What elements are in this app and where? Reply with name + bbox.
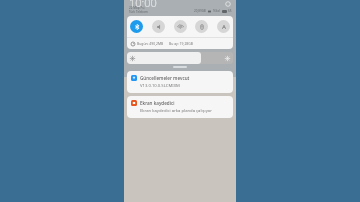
staticText: Güncellemeler mevcut	[140, 75, 190, 81]
button[interactable]: Settings	[225, 1, 231, 7]
button[interactable]: Quick setting	[217, 20, 230, 33]
button[interactable]: Bugün: 490,2MB	[127, 38, 233, 49]
staticText: Ekran kaydedici	[140, 100, 175, 106]
staticText: %Sal	[213, 9, 220, 13]
button[interactable]: Quick setting	[130, 20, 143, 33]
staticText: V13.0.10.0.SLCMIXM	[140, 83, 180, 89]
staticText: Ekran kaydedici arka planda çalışıyor	[140, 108, 213, 114]
button[interactable]: Güncellemeler mevcut	[127, 71, 233, 93]
staticText: Bu ay: 19,28GB	[169, 41, 193, 46]
button[interactable]: Quick setting	[174, 20, 187, 33]
button[interactable]: Quick setting	[195, 20, 208, 33]
staticText: Bugün: 490,2MB	[137, 41, 164, 46]
button[interactable]: Ekran kaydedici	[127, 96, 233, 118]
staticText: 65	[228, 9, 232, 13]
staticText: Türk Telekom	[129, 10, 148, 14]
button[interactable]: Quick setting	[152, 20, 165, 33]
staticText: 10:00	[129, 0, 157, 10]
staticText: 20,89GB	[194, 9, 206, 13]
staticText: 22 Mbp PG	[129, 6, 145, 10]
button[interactable]: Brightness	[127, 52, 233, 64]
